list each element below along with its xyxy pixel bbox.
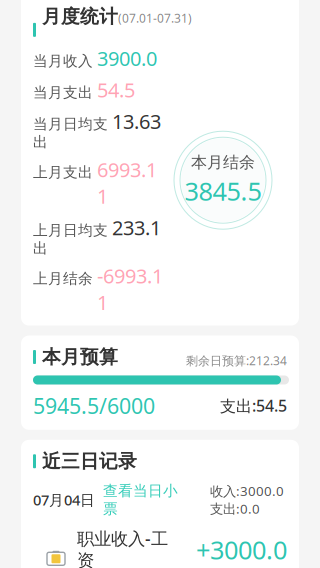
button[interactable]: 职业收入-工资 xyxy=(33,527,287,568)
staticText: 54.5 xyxy=(97,76,135,103)
staticText: 当月日均支出 xyxy=(33,115,108,151)
staticText: 当月支出 xyxy=(33,84,93,102)
staticText: 本月预算 xyxy=(42,346,118,368)
staticText: 233.1 xyxy=(112,214,161,241)
staticText: 本月结余 xyxy=(191,153,255,172)
staticText: 上月结余 xyxy=(33,270,93,288)
staticText: 近三日记录 xyxy=(42,450,137,473)
staticText: 剩余日预算:212.34 xyxy=(186,353,287,368)
staticText: 收入:3000.0 支出:0.0 xyxy=(210,482,287,517)
staticText: 13.63 xyxy=(112,108,161,135)
staticText: 6993.11 xyxy=(97,156,157,209)
staticText: 5945.5/6000 xyxy=(33,391,155,420)
staticText: +3000.0 xyxy=(196,533,287,566)
staticText: 月度统计 xyxy=(36,5,118,28)
staticText: -6993.11 xyxy=(97,262,163,315)
staticText: 查看当日小票 xyxy=(103,482,178,518)
button[interactable]: 查看当日小票 xyxy=(103,482,178,518)
staticText: 当月收入 xyxy=(33,52,93,70)
staticText: 07月04日 xyxy=(33,490,95,509)
staticText: 职业收入-工资 xyxy=(77,527,168,568)
staticText: 上月日均支出 xyxy=(33,221,108,257)
staticText: 3845.5 xyxy=(184,174,261,208)
staticText: (07.01-07.31) xyxy=(118,10,192,26)
staticText: 3900.0 xyxy=(97,45,157,71)
staticText: 上月支出 xyxy=(33,163,93,181)
staticText: 支出:54.5 xyxy=(220,395,287,416)
